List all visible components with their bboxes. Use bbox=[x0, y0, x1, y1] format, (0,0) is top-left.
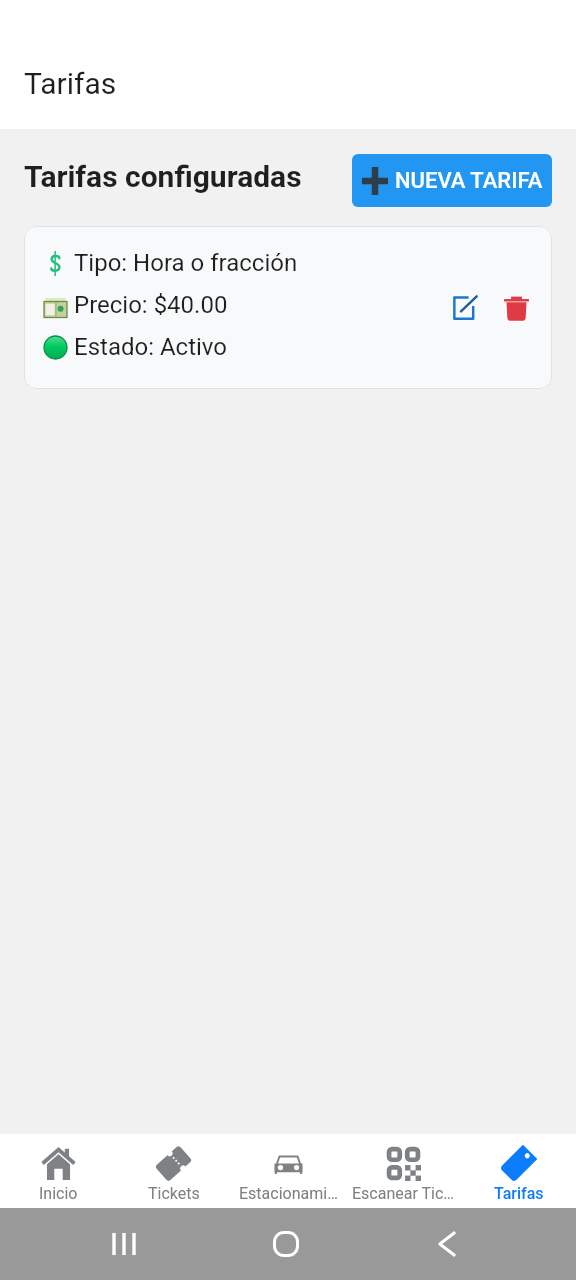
button[interactable]: Escanear Tic… bbox=[346, 1134, 461, 1208]
button[interactable]: Inicio bbox=[266, 1224, 306, 1264]
staticText: Tarifas bbox=[494, 1184, 544, 1201]
staticText: Estado: Activo bbox=[74, 333, 227, 361]
staticText: Estacionami… bbox=[239, 1184, 338, 1201]
staticText: NUEVA TARIFA bbox=[395, 168, 543, 194]
staticText: Tickets bbox=[148, 1184, 200, 1201]
staticText: Tarifas configuradas bbox=[24, 159, 302, 194]
staticText: Tipo: Hora o fracción bbox=[74, 249, 298, 277]
staticText: Inicio bbox=[39, 1184, 78, 1201]
button[interactable]: Editar tarifa bbox=[444, 288, 484, 328]
staticText: Tarifas bbox=[24, 66, 117, 101]
staticText: Precio: $40.00 bbox=[74, 291, 228, 319]
staticText: Escanear Tic… bbox=[352, 1184, 455, 1201]
button[interactable]: Tickets bbox=[116, 1134, 231, 1208]
button[interactable]: NUEVA TARIFA bbox=[352, 154, 552, 207]
button[interactable]: Recientes bbox=[104, 1224, 144, 1264]
button[interactable]: Inicio bbox=[0, 1134, 116, 1208]
button[interactable]: Estacionami… bbox=[231, 1134, 346, 1208]
button[interactable]: Atrás bbox=[427, 1224, 467, 1264]
button[interactable]: Eliminar tarifa bbox=[496, 288, 536, 328]
button[interactable]: Tipo: Hora o fracción bbox=[24, 226, 552, 389]
button[interactable]: Tarifas bbox=[461, 1134, 576, 1208]
